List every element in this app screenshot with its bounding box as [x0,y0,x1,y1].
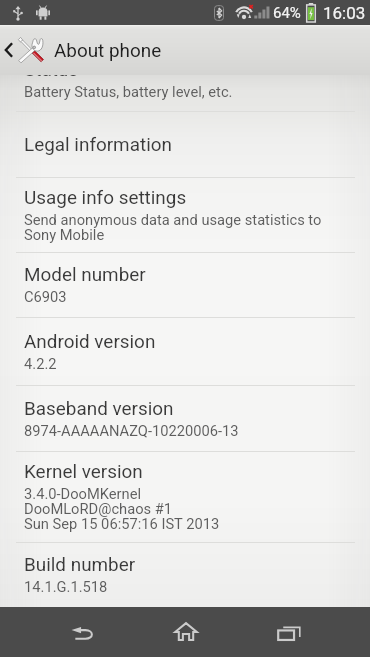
staticText: 64% [273,4,301,22]
staticText: C6903 [24,290,67,305]
staticText: 14.1.G.1.518 [24,580,108,595]
staticText: Android version [24,332,156,352]
button[interactable]: Android version [0,318,370,385]
staticText: Send anonymous data and usage statistics… [24,213,322,243]
staticText: Status [24,75,79,80]
button[interactable]: Recent apps [237,607,340,657]
staticText: Kernel version [24,462,143,482]
staticText: 3.4.0-DooMKernel DooMLoRD@chaos #1 Sun S… [24,487,220,532]
staticText: About phone [54,39,162,61]
button[interactable]: Legal information [0,112,370,177]
button[interactable]: Home [134,607,237,657]
staticText: Legal information [24,135,172,155]
button[interactable]: Build number [0,543,370,607]
staticText: Build number [24,555,136,575]
button[interactable]: Model number [0,253,370,317]
button[interactable]: Back [0,25,370,75]
staticText: Battery Status, battery level, etc. [24,85,233,100]
staticText: 4.2.2 [24,357,57,372]
other: Back [4,42,13,58]
button[interactable]: Status [0,75,370,111]
staticText: 16:03 [323,3,366,23]
staticText: Model number [24,265,146,285]
button[interactable]: Baseband version [0,386,370,451]
button[interactable]: Back [31,607,134,657]
button[interactable]: Usage info settings [0,178,370,252]
staticText: 8974-AAAAANAZQ-10220006-13 [24,424,239,439]
staticText: Usage info settings [24,188,187,208]
button[interactable]: Kernel version [0,452,370,542]
staticText: Baseband version [24,399,174,419]
